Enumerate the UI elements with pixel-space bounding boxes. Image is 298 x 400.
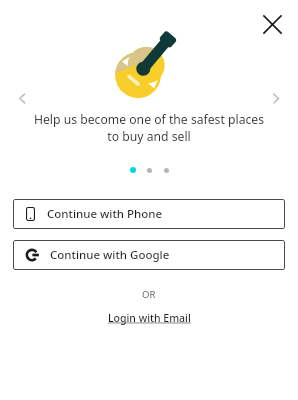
staticText: OR bbox=[142, 288, 156, 301]
staticText: Continue with Phone bbox=[47, 206, 163, 222]
staticText: Login with Email bbox=[108, 311, 191, 325]
staticText: Continue with Google bbox=[50, 247, 170, 263]
button[interactable]: Previous bbox=[6, 82, 38, 114]
button[interactable]: Continue with Phone bbox=[13, 199, 285, 229]
button[interactable]: Continue with Google bbox=[13, 240, 285, 270]
button[interactable]: Next bbox=[260, 82, 292, 114]
staticText: Help us become one of the safest places … bbox=[22, 111, 276, 145]
button[interactable]: Close bbox=[254, 6, 290, 42]
button[interactable]: Login with Email bbox=[104, 310, 195, 326]
